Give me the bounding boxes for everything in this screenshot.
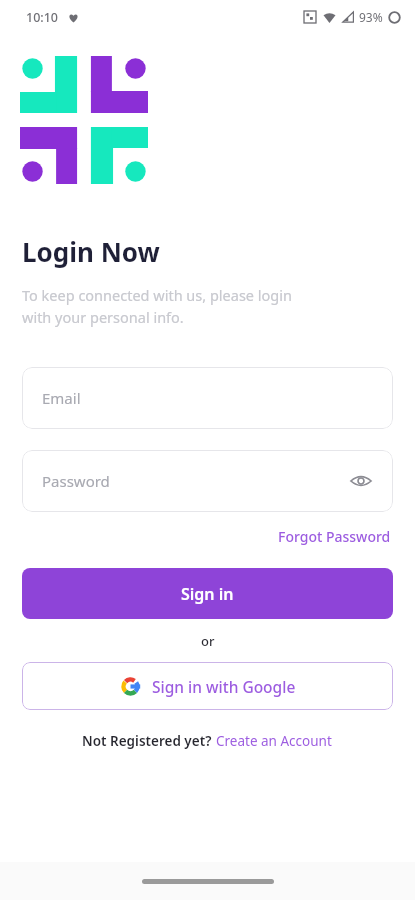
- staticText: 10:10: [26, 9, 59, 26]
- button[interactable]: Forgot Password: [276, 524, 393, 549]
- staticText: Login Now: [22, 234, 160, 269]
- staticText: To keep connected with us, please login …: [22, 285, 292, 327]
- staticText: Forgot Password: [278, 527, 391, 546]
- button[interactable]: Sign in: [22, 568, 393, 619]
- button[interactable]: Email: [22, 367, 393, 429]
- staticText: Email: [42, 388, 81, 408]
- staticText: Sign in: [181, 583, 234, 605]
- staticText: 93%: [359, 9, 383, 25]
- staticText: Sign in with Google: [152, 676, 296, 697]
- button[interactable]: Show password: [345, 465, 377, 497]
- staticText: Password: [42, 471, 110, 491]
- staticText: Not Registered yet?: [82, 732, 215, 750]
- staticText: or: [201, 632, 215, 650]
- button[interactable]: Create an Account: [215, 730, 333, 752]
- staticText: Create an Account: [216, 732, 332, 750]
- button[interactable]: Sign in with Google: [22, 662, 393, 710]
- button[interactable]: Password: [22, 450, 393, 512]
